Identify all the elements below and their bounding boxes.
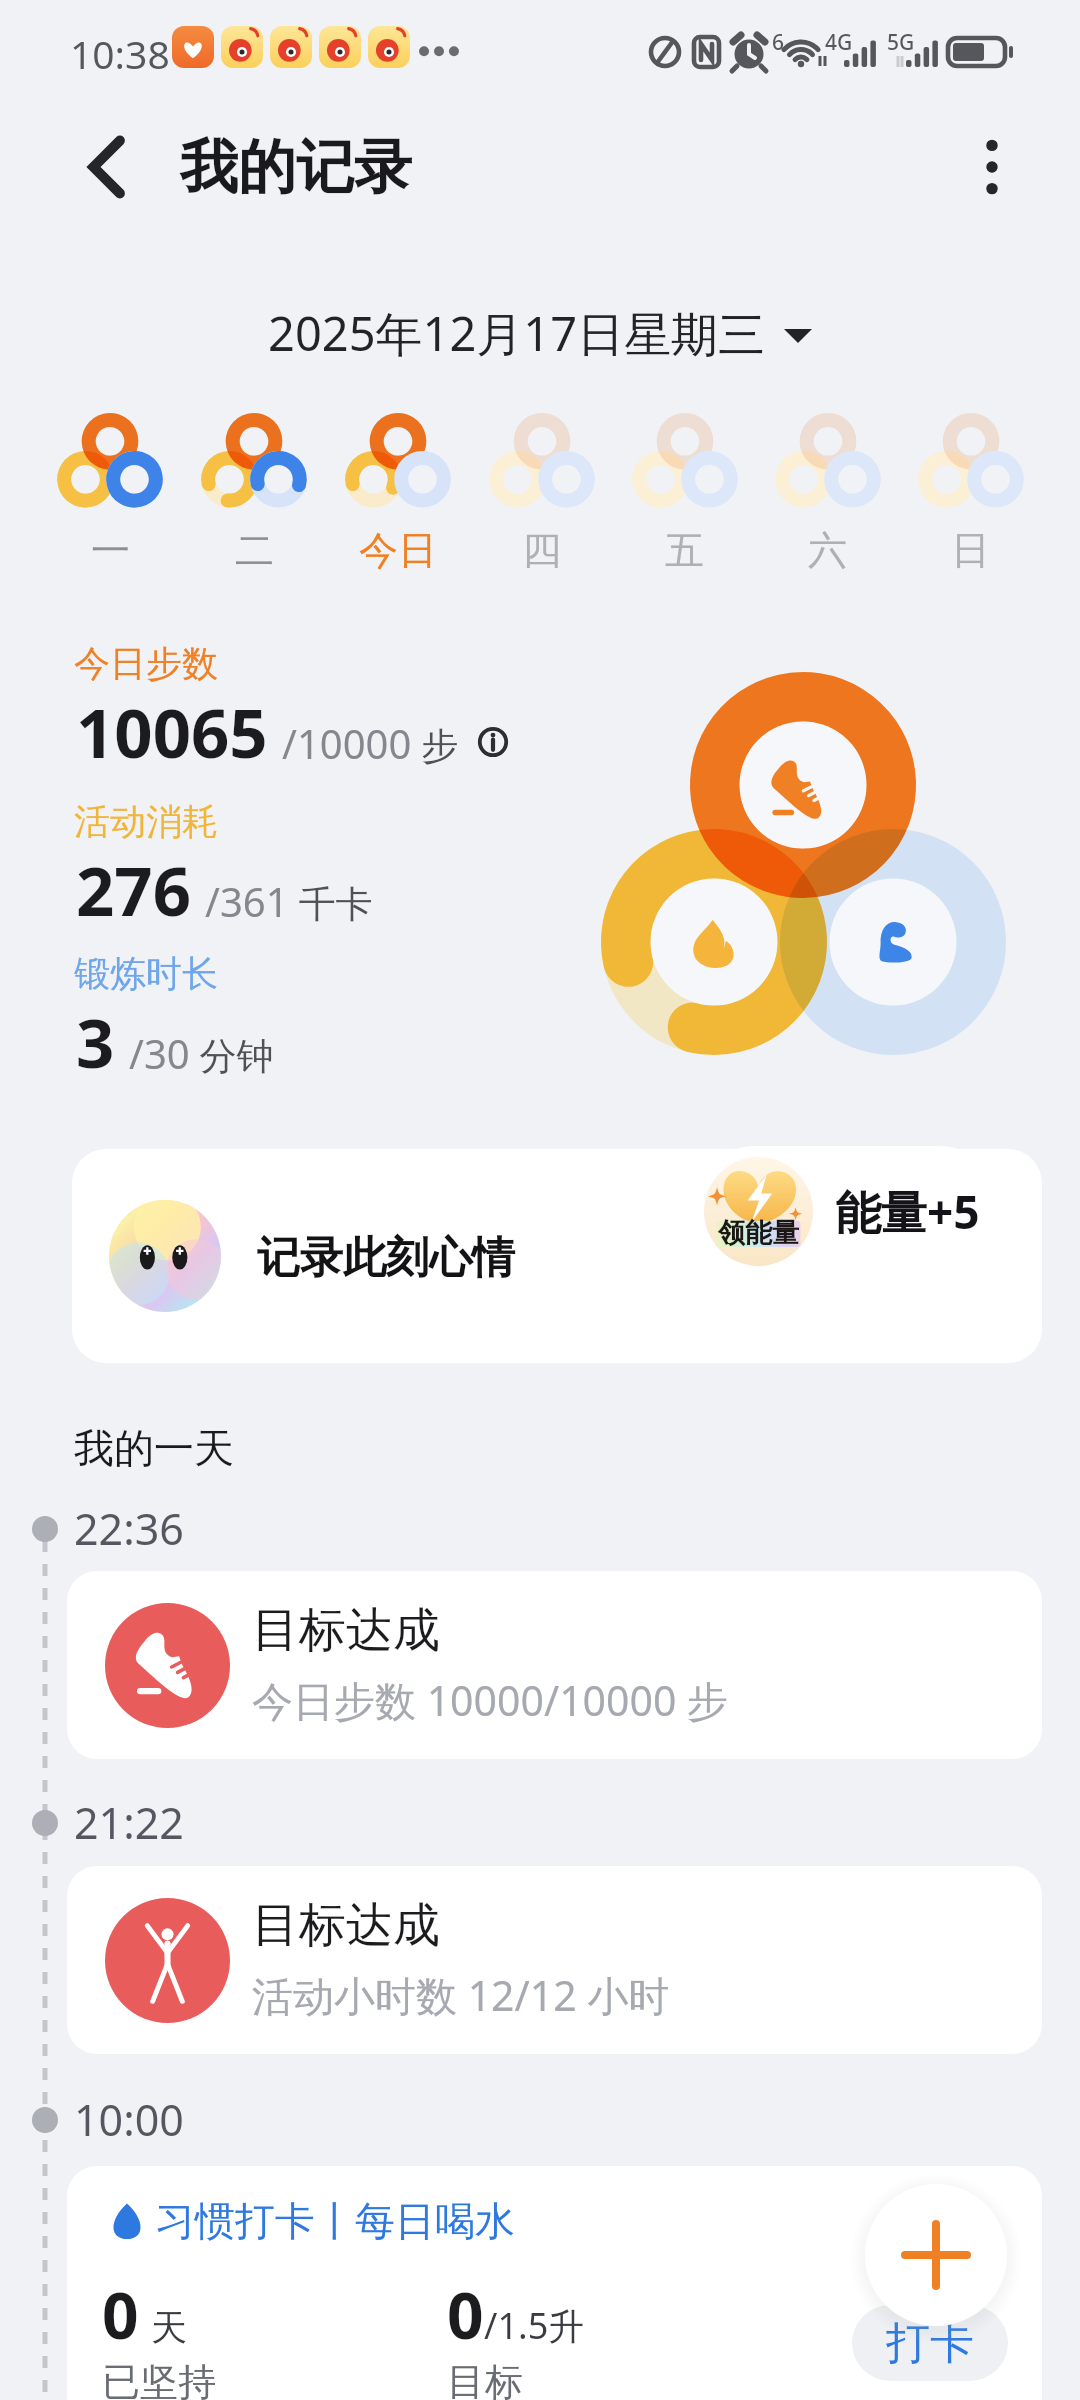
staticText: 0 xyxy=(102,2271,139,2358)
staticText: 能量+5 xyxy=(835,1180,980,1243)
button[interactable]: 日 xyxy=(899,409,1042,575)
staticText: 21:22 xyxy=(74,1793,184,1852)
staticText: 我的一天 xyxy=(74,1423,234,1473)
button[interactable]: 目标达成 xyxy=(67,1571,1042,1759)
staticText: 5G xyxy=(887,28,915,57)
staticText: 2025年12月17日星期三 xyxy=(268,301,766,365)
button[interactable]: 五 xyxy=(613,409,756,575)
button[interactable]: 返回 xyxy=(56,115,160,219)
staticText: 锻炼时长 xyxy=(74,951,218,996)
staticText: /1.5升 xyxy=(484,2301,585,2350)
staticText: 目标达成 xyxy=(252,1896,440,1955)
staticText: /361 xyxy=(205,874,289,928)
staticText: 千卡 xyxy=(289,877,373,928)
button[interactable]: 记录此刻心情 xyxy=(72,1149,1042,1363)
button[interactable]: 更多选项 xyxy=(940,115,1044,219)
staticText: 天 xyxy=(151,2305,187,2350)
button[interactable]: 二 xyxy=(182,409,326,575)
button[interactable]: 添加记录 xyxy=(846,2165,1026,2345)
staticText: 今日步数 10000/10000 步 xyxy=(252,1672,729,1728)
staticText: 4G xyxy=(825,28,853,57)
button[interactable]: 今日 xyxy=(326,409,470,575)
staticText: 10065 xyxy=(76,686,268,777)
button[interactable]: 步数说明 xyxy=(471,720,515,764)
staticText: /10000 xyxy=(282,716,412,770)
staticText: 今日 xyxy=(359,526,437,575)
staticText: 276 xyxy=(76,844,191,935)
button[interactable]: 习惯打卡丨每日喝水 xyxy=(67,2166,1042,2400)
staticText: 二 xyxy=(235,526,274,575)
staticText: 打卡 xyxy=(886,2316,974,2371)
staticText: 今日步数 xyxy=(74,641,218,686)
staticText: 领能量 xyxy=(718,1216,799,1250)
staticText: 活动小时数 12/12 小时 xyxy=(252,1967,670,2023)
button[interactable]: 四 xyxy=(470,409,613,575)
staticText: /30 xyxy=(129,1026,190,1080)
staticText: 四 xyxy=(522,526,561,575)
button[interactable]: 一 xyxy=(38,409,182,575)
staticText: 五 xyxy=(665,526,704,575)
staticText: 目标 xyxy=(447,2358,523,2400)
staticText: 10:38 xyxy=(70,27,170,80)
staticText: 22:36 xyxy=(74,1499,184,1558)
staticText: 6 xyxy=(772,28,785,57)
staticText: 0 xyxy=(447,2271,484,2358)
staticText: 已坚持 xyxy=(102,2358,216,2400)
button[interactable]: 领能量 xyxy=(690,1146,1004,1277)
staticText: 活动消耗 xyxy=(74,799,218,844)
staticText: 3 xyxy=(76,996,115,1087)
button[interactable]: 六 xyxy=(756,409,899,575)
staticText: 习惯打卡丨每日喝水 xyxy=(155,2196,515,2246)
staticText: 记录此刻心情 xyxy=(257,1231,515,1285)
button[interactable]: 目标达成 xyxy=(67,1866,1042,2054)
staticText: 我的记录 xyxy=(180,131,412,204)
staticText: 步 xyxy=(412,719,459,770)
staticText: 日 xyxy=(951,526,990,575)
staticText: 分钟 xyxy=(190,1029,274,1080)
button[interactable]: 2025年12月17日星期三 xyxy=(258,297,822,369)
button[interactable]: 打卡 xyxy=(852,2305,1008,2381)
staticText: 一 xyxy=(91,526,130,575)
staticText: 10:00 xyxy=(74,2090,184,2149)
staticText: 目标达成 xyxy=(252,1601,440,1660)
staticText: 六 xyxy=(808,526,847,575)
